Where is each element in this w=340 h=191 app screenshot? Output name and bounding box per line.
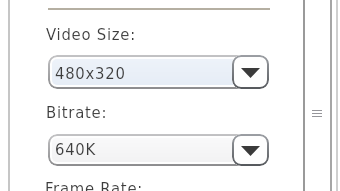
staticText: Video Size:	[46, 25, 136, 44]
button[interactable]: Scroll bar	[305, 0, 330, 191]
button[interactable]: Open dropdown	[232, 55, 269, 89]
button[interactable]: 640K	[48, 134, 269, 166]
staticText: 480x320	[55, 64, 126, 83]
button[interactable]: Open dropdown	[232, 134, 269, 166]
staticText: 640K	[55, 140, 97, 159]
staticText: Bitrate:	[46, 103, 108, 122]
button[interactable]: 480x320	[48, 55, 269, 89]
staticText: Frame Rate:	[45, 179, 144, 191]
